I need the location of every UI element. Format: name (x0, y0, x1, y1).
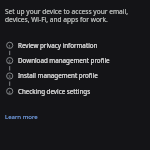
button[interactable]: 3 (0, 68, 150, 84)
staticText: Set up your device to access your email,… (5, 7, 128, 24)
button[interactable]: 1 (0, 38, 150, 54)
button[interactable]: 4 (0, 84, 150, 100)
button[interactable]: Learn more (5, 113, 38, 121)
staticText: Review privacy information (18, 41, 98, 50)
staticText: Learn more (5, 113, 38, 121)
staticText: Download management profile (18, 56, 110, 65)
staticText: 2 (8, 59, 11, 65)
staticText: 3 (8, 74, 11, 80)
staticText: Install management profile (18, 71, 98, 80)
staticText: 1 (8, 44, 11, 50)
staticText: 4 (8, 90, 11, 96)
button[interactable]: 2 (0, 53, 150, 69)
staticText: Checking device settings (18, 87, 91, 96)
